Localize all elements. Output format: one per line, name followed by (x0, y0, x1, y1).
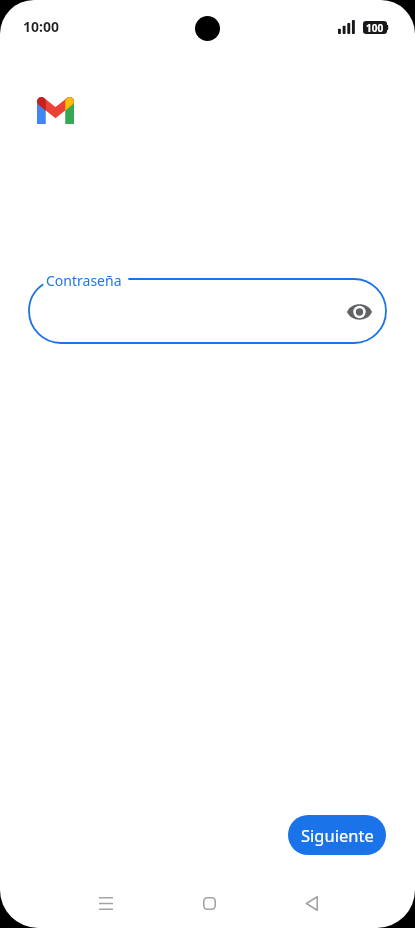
button[interactable]: Contraseña (29, 279, 386, 343)
staticText: 100 (366, 21, 384, 34)
button[interactable]: Inicio (185, 879, 233, 927)
staticText: Contraseña (46, 271, 122, 289)
staticText: 10:00 (23, 17, 59, 36)
staticText: Siguiente (301, 824, 374, 846)
button[interactable]: Atrás (287, 879, 335, 927)
button[interactable]: Siguiente (288, 815, 386, 855)
button[interactable]: Recientes (82, 879, 130, 927)
button[interactable]: Mostrar contraseña (337, 290, 382, 334)
